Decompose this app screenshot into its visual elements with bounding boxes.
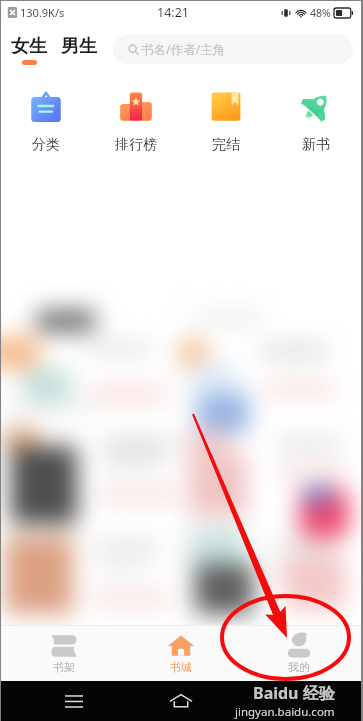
button[interactable]: 分类 [1,70,91,161]
button[interactable]: 书名/作者/主角 [113,35,353,64]
button[interactable]: Home [146,681,216,721]
button[interactable]: 新书 [271,70,361,161]
button[interactable]: 我的 [244,626,354,681]
staticText: 女生 [11,35,47,58]
staticText: Baidu 经验 [253,682,335,704]
staticText: 130.9K/s [20,5,65,20]
button[interactable]: 书城 [126,626,236,681]
button[interactable]: Recent apps [39,681,109,721]
button[interactable]: 书架 [9,626,119,681]
staticText: 排行榜 [115,136,157,154]
staticText: 书名/作者/主角 [141,41,226,58]
staticText: 书架 [53,660,75,674]
button[interactable]: 女生 [11,35,47,65]
button[interactable]: Back [254,681,324,721]
staticText: jingyan.baidu.com [235,704,335,720]
button[interactable]: 男生 [61,35,97,65]
staticText: 新书 [302,136,330,154]
staticText: 完结 [212,136,240,154]
staticText: 男生 [61,35,97,58]
button[interactable]: 排行榜 [91,70,181,161]
staticText: 书城 [170,660,192,674]
staticText: 48% [310,6,331,20]
staticText: 分类 [32,136,60,154]
button[interactable]: 完结 [181,70,271,161]
staticText: 我的 [288,660,310,674]
staticText: 14:21 [157,4,189,21]
